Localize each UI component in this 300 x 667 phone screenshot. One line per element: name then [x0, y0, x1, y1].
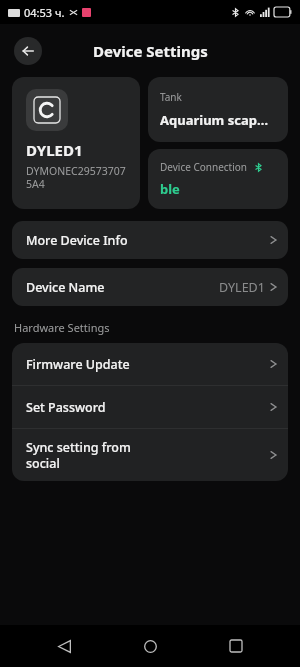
staticText: 04:53 ч. [24, 5, 65, 20]
button[interactable]: Sync setting from social [12, 429, 288, 481]
button[interactable]: Home [128, 625, 172, 667]
staticText: Firmware Update [26, 356, 130, 373]
button[interactable]: DYLED1 [12, 77, 140, 209]
button[interactable]: Device Name [12, 268, 288, 306]
staticText: Device Name [26, 279, 105, 296]
button[interactable]: Tank [148, 77, 288, 142]
button[interactable]: Back [42, 625, 86, 667]
staticText: More Device Info [26, 232, 128, 249]
staticText: Device Connection [160, 160, 248, 174]
staticText: Set Password [26, 399, 106, 416]
staticText: Device Settings [93, 41, 208, 61]
staticText: DYMONEC295737075A4 [26, 164, 130, 191]
button[interactable]: More Device Info [12, 221, 288, 259]
button[interactable]: Device Connection [148, 149, 288, 209]
staticText: Hardware Settings [14, 320, 110, 335]
button[interactable]: Set Password [12, 386, 288, 428]
staticText: ble [160, 180, 180, 198]
button[interactable]: Firmware Update [12, 343, 288, 385]
staticText: Tank [160, 90, 182, 104]
staticText: DYLED1 [26, 140, 83, 160]
staticText: Aquarium scap… [160, 111, 269, 129]
button[interactable]: Back [14, 37, 42, 65]
staticText: Sync setting from social [26, 439, 131, 471]
staticText: DYLED1 [219, 279, 265, 296]
button[interactable]: Recent apps [214, 625, 258, 667]
